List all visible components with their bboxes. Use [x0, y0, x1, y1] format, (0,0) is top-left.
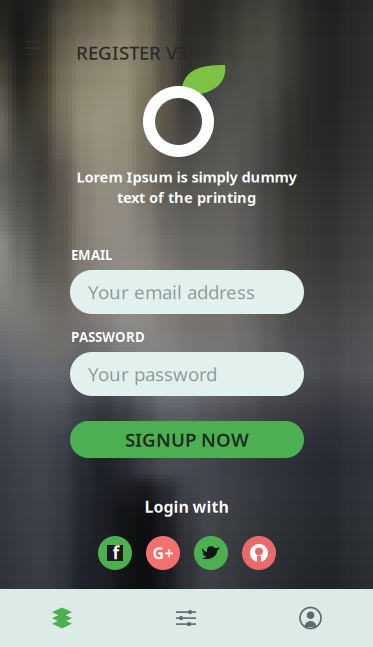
staticText: REGISTER V3 [76, 40, 188, 65]
staticText: G+ [152, 542, 173, 564]
button[interactable]: SIGNUP NOW [70, 421, 304, 458]
button[interactable]: Settings [124, 589, 248, 647]
staticText: Your password [88, 362, 217, 386]
button[interactable]: Menu [12, 26, 56, 70]
button[interactable]: Layers [0, 589, 124, 647]
staticText: Lorem Ipsum is simply dummy [76, 167, 296, 186]
staticText: Login with [144, 496, 228, 517]
staticText: text of the printing [117, 187, 256, 207]
staticText: Your email address [88, 280, 255, 304]
staticText: SIGNUP NOW [125, 427, 249, 452]
button[interactable]: GitHub [237, 531, 281, 575]
staticText: EMAIL [71, 246, 112, 264]
staticText: f [112, 541, 119, 564]
staticText: PASSWORD [71, 328, 145, 346]
button[interactable]: Twitter [189, 531, 233, 575]
button[interactable]: Google Plus [141, 531, 185, 575]
button[interactable]: Profile [248, 589, 373, 647]
button[interactable]: Facebook [93, 531, 137, 575]
